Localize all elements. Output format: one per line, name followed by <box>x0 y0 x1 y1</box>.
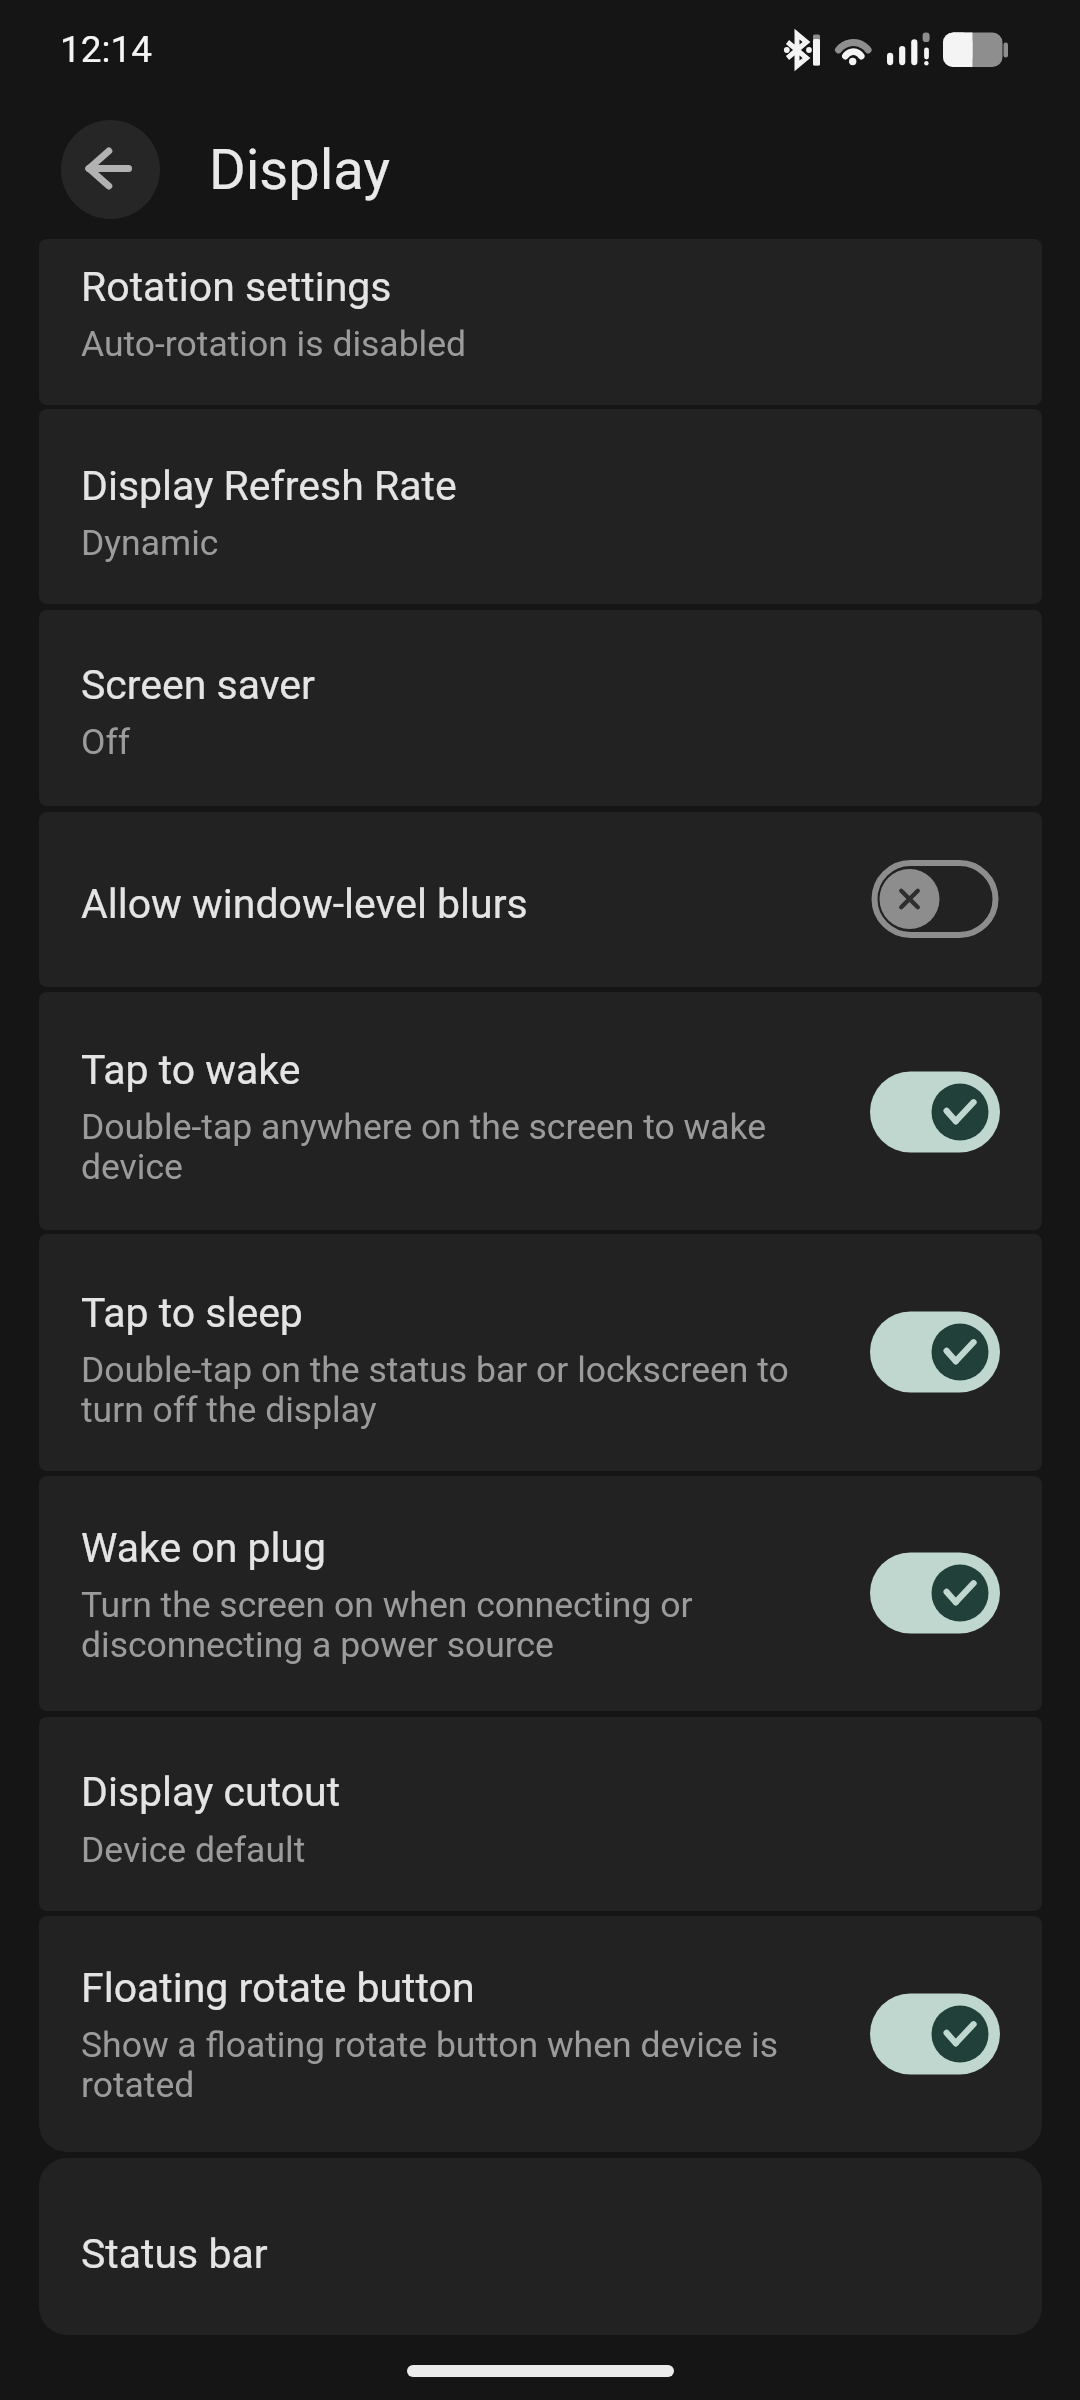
staticText: Rotation settings <box>81 263 392 311</box>
button[interactable]: Rotation settings <box>39 239 1042 405</box>
staticText: Turn the screen on when connecting or di… <box>81 1584 793 1666</box>
staticText: Display <box>209 137 390 203</box>
staticText: Show a floating rotate button when devic… <box>81 2024 793 2106</box>
button[interactable]: Back <box>61 120 160 219</box>
staticText: Tap to sleep <box>81 1289 303 1337</box>
button[interactable]: Enabled <box>870 1311 1000 1393</box>
staticText: Device default <box>81 1829 793 1871</box>
staticText: Tap to wake <box>81 1046 301 1094</box>
button[interactable]: Enabled <box>870 1552 1000 1634</box>
button[interactable]: Screen saver <box>39 610 1042 806</box>
staticText: Display cutout <box>81 1768 341 1816</box>
staticText: Allow window-level blurs <box>81 880 528 928</box>
button[interactable]: Tap to sleep <box>39 1234 1042 1471</box>
staticText: Double-tap on the status bar or lockscre… <box>81 1349 793 1431</box>
button[interactable]: Tap to wake <box>39 992 1042 1230</box>
button[interactable]: Allow window-level blurs <box>39 812 1042 987</box>
button[interactable]: Display cutout <box>39 1717 1042 1911</box>
button[interactable]: Status bar <box>39 2158 1042 2335</box>
button[interactable]: Display Refresh Rate <box>39 409 1042 604</box>
staticText: Off <box>81 721 793 763</box>
other: Home <box>407 2365 674 2377</box>
button[interactable]: Disabled <box>870 858 1000 940</box>
button[interactable]: Enabled <box>870 1071 1000 1153</box>
staticText: Dynamic <box>81 522 793 564</box>
button[interactable]: Enabled <box>870 1993 1000 2075</box>
staticText: Screen saver <box>81 661 316 709</box>
staticText: Double-tap anywhere on the screen to wak… <box>81 1106 793 1188</box>
staticText: Status bar <box>81 2230 268 2278</box>
button[interactable]: Floating rotate button <box>39 1916 1042 2152</box>
staticText: 12:14 <box>60 28 153 71</box>
staticText: Floating rotate button <box>81 1964 475 2012</box>
staticText: Display Refresh Rate <box>81 462 457 510</box>
staticText: Wake on plug <box>81 1524 327 1572</box>
staticText: Auto-rotation is disabled <box>81 323 793 365</box>
button[interactable]: Wake on plug <box>39 1476 1042 1711</box>
